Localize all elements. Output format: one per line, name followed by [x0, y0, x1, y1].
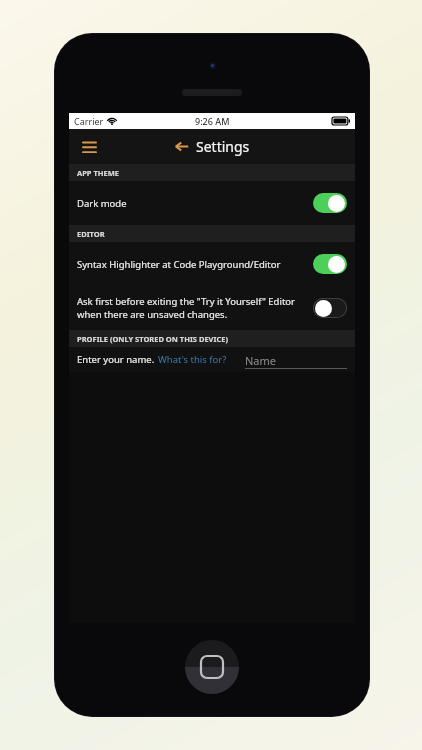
button[interactable]: Toggle on: [313, 254, 347, 274]
staticText: Dark mode: [77, 197, 127, 210]
button[interactable]: Settings: [174, 137, 250, 156]
staticText: 9:26 AM: [195, 115, 230, 127]
staticText: Enter your name.: [77, 353, 155, 366]
button[interactable]: Menu: [74, 132, 104, 162]
staticText: EDITOR: [77, 229, 105, 239]
staticText: Syntax Highlighter at Code Playground/Ed…: [77, 258, 281, 271]
button[interactable]: Toggle off: [313, 298, 347, 318]
staticText: when there are unsaved changes.: [77, 308, 228, 321]
button[interactable]: Ask first before exiting the "Try it You…: [69, 286, 355, 330]
button[interactable]: Dark mode: [69, 181, 355, 225]
button[interactable]: Name: [245, 351, 347, 369]
button[interactable]: Toggle on: [313, 193, 347, 213]
staticText: What's this for?: [158, 353, 227, 366]
staticText: Name: [245, 353, 277, 368]
staticText: APP THEME: [77, 168, 119, 178]
button[interactable]: What's this for?: [158, 353, 227, 366]
staticText: Carrier: [74, 115, 104, 127]
staticText: PROFILE (ONLY STORED ON THIS DEVICE): [77, 334, 228, 344]
staticText: Ask first before exiting the "Try it You…: [77, 295, 295, 308]
staticText: Settings: [196, 137, 250, 156]
button[interactable]: Syntax Highlighter at Code Playground/Ed…: [69, 242, 355, 286]
